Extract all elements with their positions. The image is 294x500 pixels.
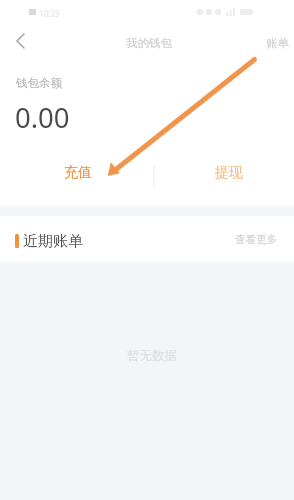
button[interactable]: 提现 — [147, 158, 294, 188]
staticText: 充值 — [64, 164, 92, 182]
staticText: 近期账单 — [23, 232, 83, 251]
staticText: 0.00 — [15, 99, 70, 136]
staticText: 10:23 — [39, 8, 60, 19]
button[interactable]: 账单 — [261, 31, 294, 55]
staticText: 账单 — [266, 36, 289, 50]
staticText: 暂无数据 — [127, 348, 177, 364]
staticText: 查看更多 — [235, 233, 277, 246]
staticText: 我的钱包 — [126, 36, 172, 50]
staticText: 钱包余额 — [16, 76, 62, 90]
button[interactable]: 查看更多 — [218, 227, 294, 252]
staticText: 提现 — [215, 164, 243, 182]
button[interactable]: Back — [0, 24, 34, 58]
button[interactable]: 充值 — [0, 158, 147, 188]
